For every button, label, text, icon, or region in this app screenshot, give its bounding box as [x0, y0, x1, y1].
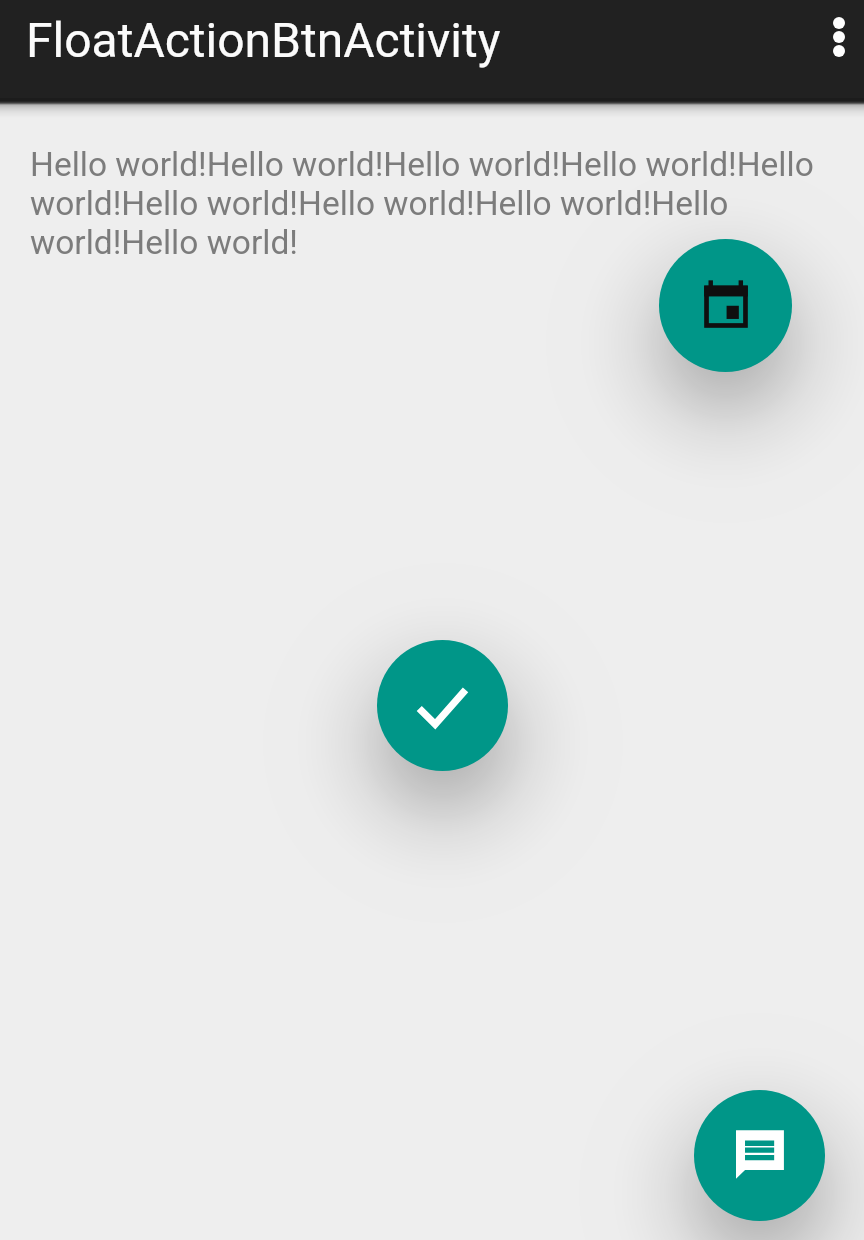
- staticText: FloatActionBtnActivity: [26, 12, 501, 68]
- button[interactable]: Confirm: [377, 640, 508, 771]
- button[interactable]: Pick a date: [659, 239, 792, 372]
- button[interactable]: More options: [808, 1, 864, 73]
- button[interactable]: Messages: [694, 1090, 825, 1221]
- staticText: Hello world!Hello world!Hello world!Hell…: [30, 145, 820, 262]
